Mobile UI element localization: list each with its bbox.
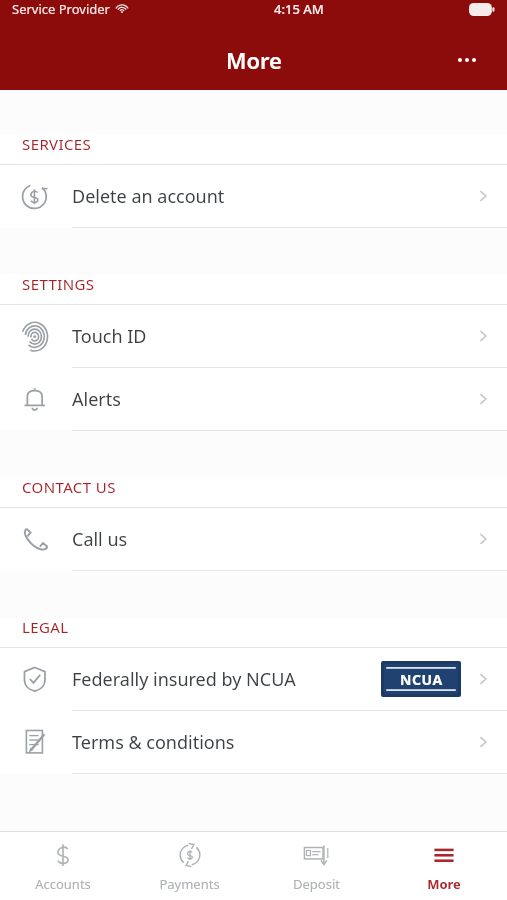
button[interactable]: Call us [0,508,507,570]
staticText: Accounts [35,875,91,893]
staticText: 4:15 AM [274,0,324,18]
button[interactable]: Touch ID [0,305,507,367]
button[interactable]: Federally insured by NCUA [0,648,507,710]
staticText: Federally insured by NCUA [72,667,296,692]
staticText: Call us [72,527,128,552]
button[interactable]: More options [445,38,489,82]
button[interactable]: Delete an account [0,165,507,227]
button[interactable]: Payments [126,832,253,900]
button[interactable]: More [380,832,507,900]
staticText: More [226,45,282,75]
staticText: More [427,875,461,893]
button[interactable]: Deposit [253,832,380,900]
staticText: Delete an account [72,184,225,209]
staticText: Touch ID [72,324,147,349]
staticText: NCUA [400,670,443,689]
button[interactable]: Terms & conditions [0,711,507,773]
staticText: SETTINGS [22,274,95,294]
staticText: Payments [159,875,220,893]
staticText: Service Provider [12,0,110,18]
staticText: Alerts [72,387,121,412]
staticText: CONTACT US [22,477,116,497]
staticText: SERVICES [22,134,92,154]
staticText: LEGAL [22,617,69,637]
button[interactable]: Alerts [0,368,507,430]
staticText: Terms & conditions [72,730,235,755]
staticText: Deposit [293,875,340,893]
button[interactable]: Accounts [0,832,126,900]
